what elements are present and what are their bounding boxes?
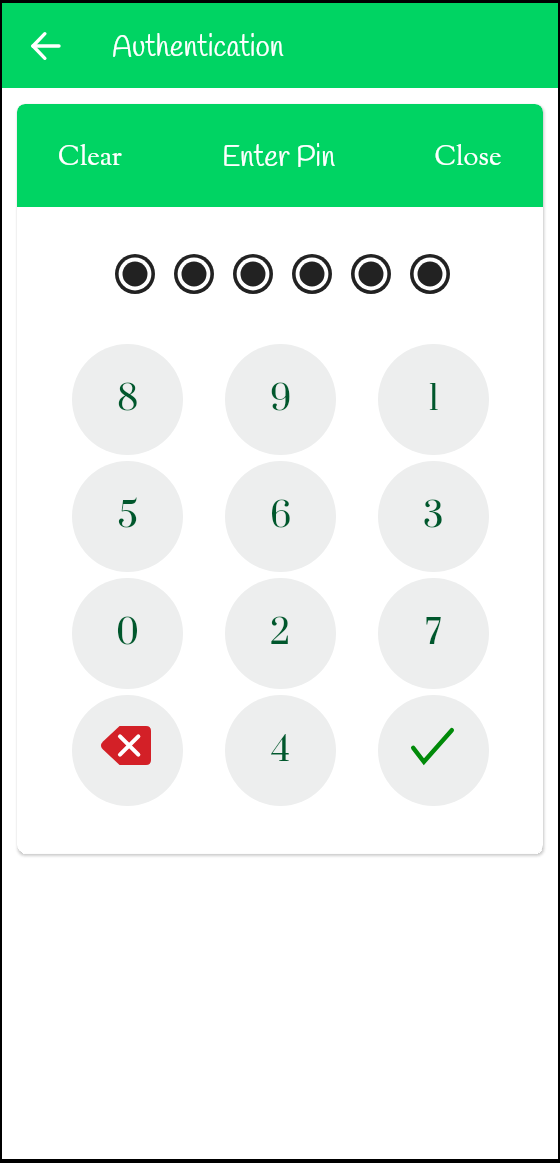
staticText: 5: [118, 494, 138, 539]
staticText: 2: [270, 611, 291, 656]
button[interactable]: 4: [225, 695, 336, 806]
button[interactable]: 8: [72, 344, 183, 455]
staticText: 8: [117, 377, 139, 422]
button[interactable]: Confirm: [378, 695, 489, 806]
button[interactable]: 1: [378, 344, 489, 455]
staticText: Clear: [58, 139, 122, 178]
staticText: 4: [271, 728, 291, 773]
staticText: 1: [428, 377, 440, 422]
button[interactable]: 0: [72, 578, 183, 689]
button[interactable]: 2: [225, 578, 336, 689]
staticText: 3: [423, 494, 444, 539]
staticText: Authentication: [112, 29, 284, 68]
staticText: 7: [425, 611, 442, 656]
button[interactable]: Clear: [48, 104, 132, 207]
button[interactable]: Back: [23, 23, 68, 68]
button[interactable]: Backspace: [72, 695, 183, 806]
button[interactable]: Enter Pin: [212, 104, 345, 207]
button[interactable]: 5: [72, 461, 183, 572]
button[interactable]: 9: [225, 344, 336, 455]
staticText: 0: [116, 611, 139, 656]
staticText: Close: [434, 139, 502, 178]
button[interactable]: 7: [378, 578, 489, 689]
staticText: Enter Pin: [222, 139, 335, 178]
button[interactable]: 3: [378, 461, 489, 572]
button[interactable]: Close: [424, 104, 512, 207]
staticText: 9: [270, 377, 292, 422]
button[interactable]: 6: [225, 461, 336, 572]
staticText: 6: [270, 494, 292, 539]
